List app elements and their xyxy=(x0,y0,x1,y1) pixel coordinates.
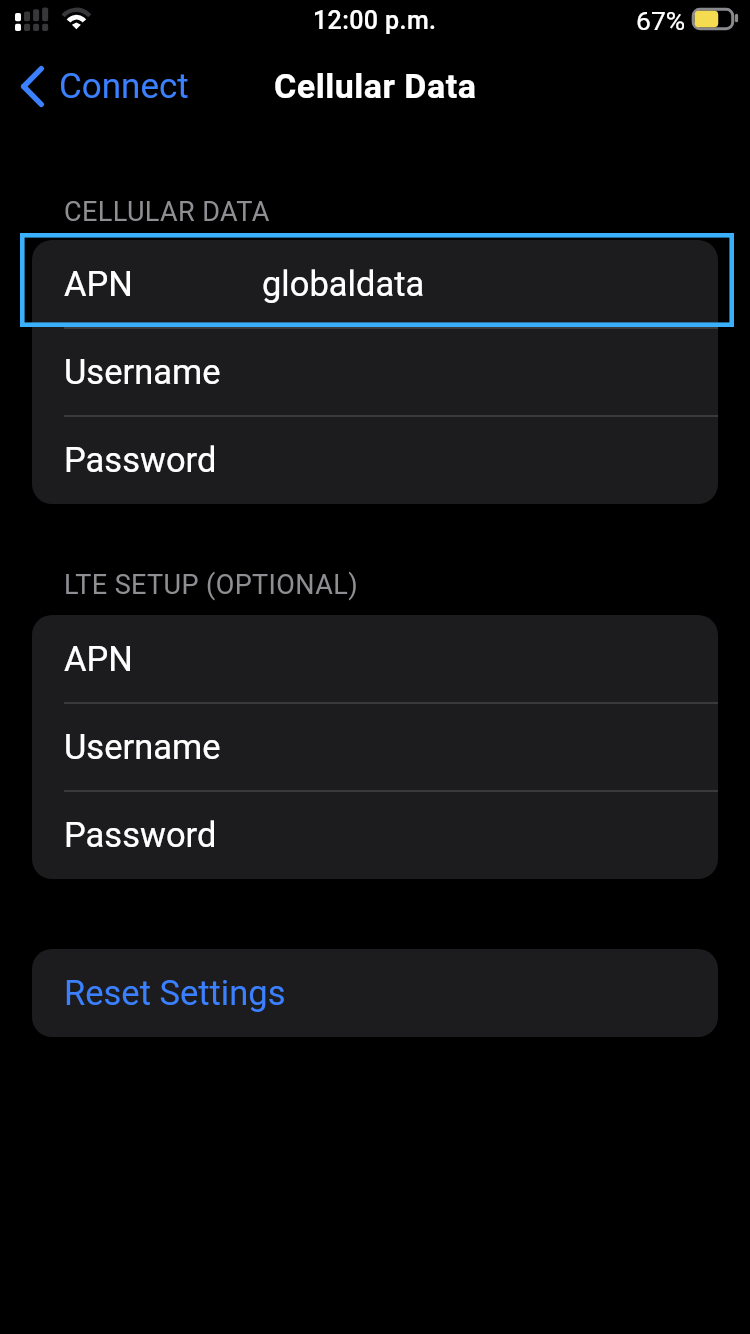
button[interactable]: Password xyxy=(32,791,718,879)
button[interactable]: Username xyxy=(32,703,718,791)
staticText: Username xyxy=(64,352,221,392)
staticText: 67% xyxy=(636,5,686,36)
button[interactable]: APN xyxy=(32,240,718,328)
staticText: Password xyxy=(64,815,217,855)
staticText: CELLULAR DATA xyxy=(64,196,270,228)
staticText: Username xyxy=(64,727,221,767)
staticText: APN xyxy=(64,639,133,679)
button[interactable]: APN xyxy=(32,615,718,703)
staticText: Connect xyxy=(59,66,189,107)
button[interactable]: Connect xyxy=(0,60,201,113)
other: Wi-Fi xyxy=(56,5,96,39)
staticText: Reset Settings xyxy=(64,973,286,1013)
staticText: globaldata xyxy=(262,264,425,304)
button[interactable]: Password xyxy=(32,416,718,504)
staticText: 12:00 p.m. xyxy=(313,6,437,35)
other: Battery 67 percent xyxy=(690,4,742,34)
other: Cellular signal xyxy=(15,13,49,31)
staticText: LTE SETUP (OPTIONAL) xyxy=(64,569,358,601)
staticText: APN xyxy=(64,264,133,304)
button[interactable]: Username xyxy=(32,328,718,416)
staticText: Password xyxy=(64,440,217,480)
staticText: Cellular Data xyxy=(274,66,477,106)
button[interactable]: Reset Settings xyxy=(32,949,718,1037)
